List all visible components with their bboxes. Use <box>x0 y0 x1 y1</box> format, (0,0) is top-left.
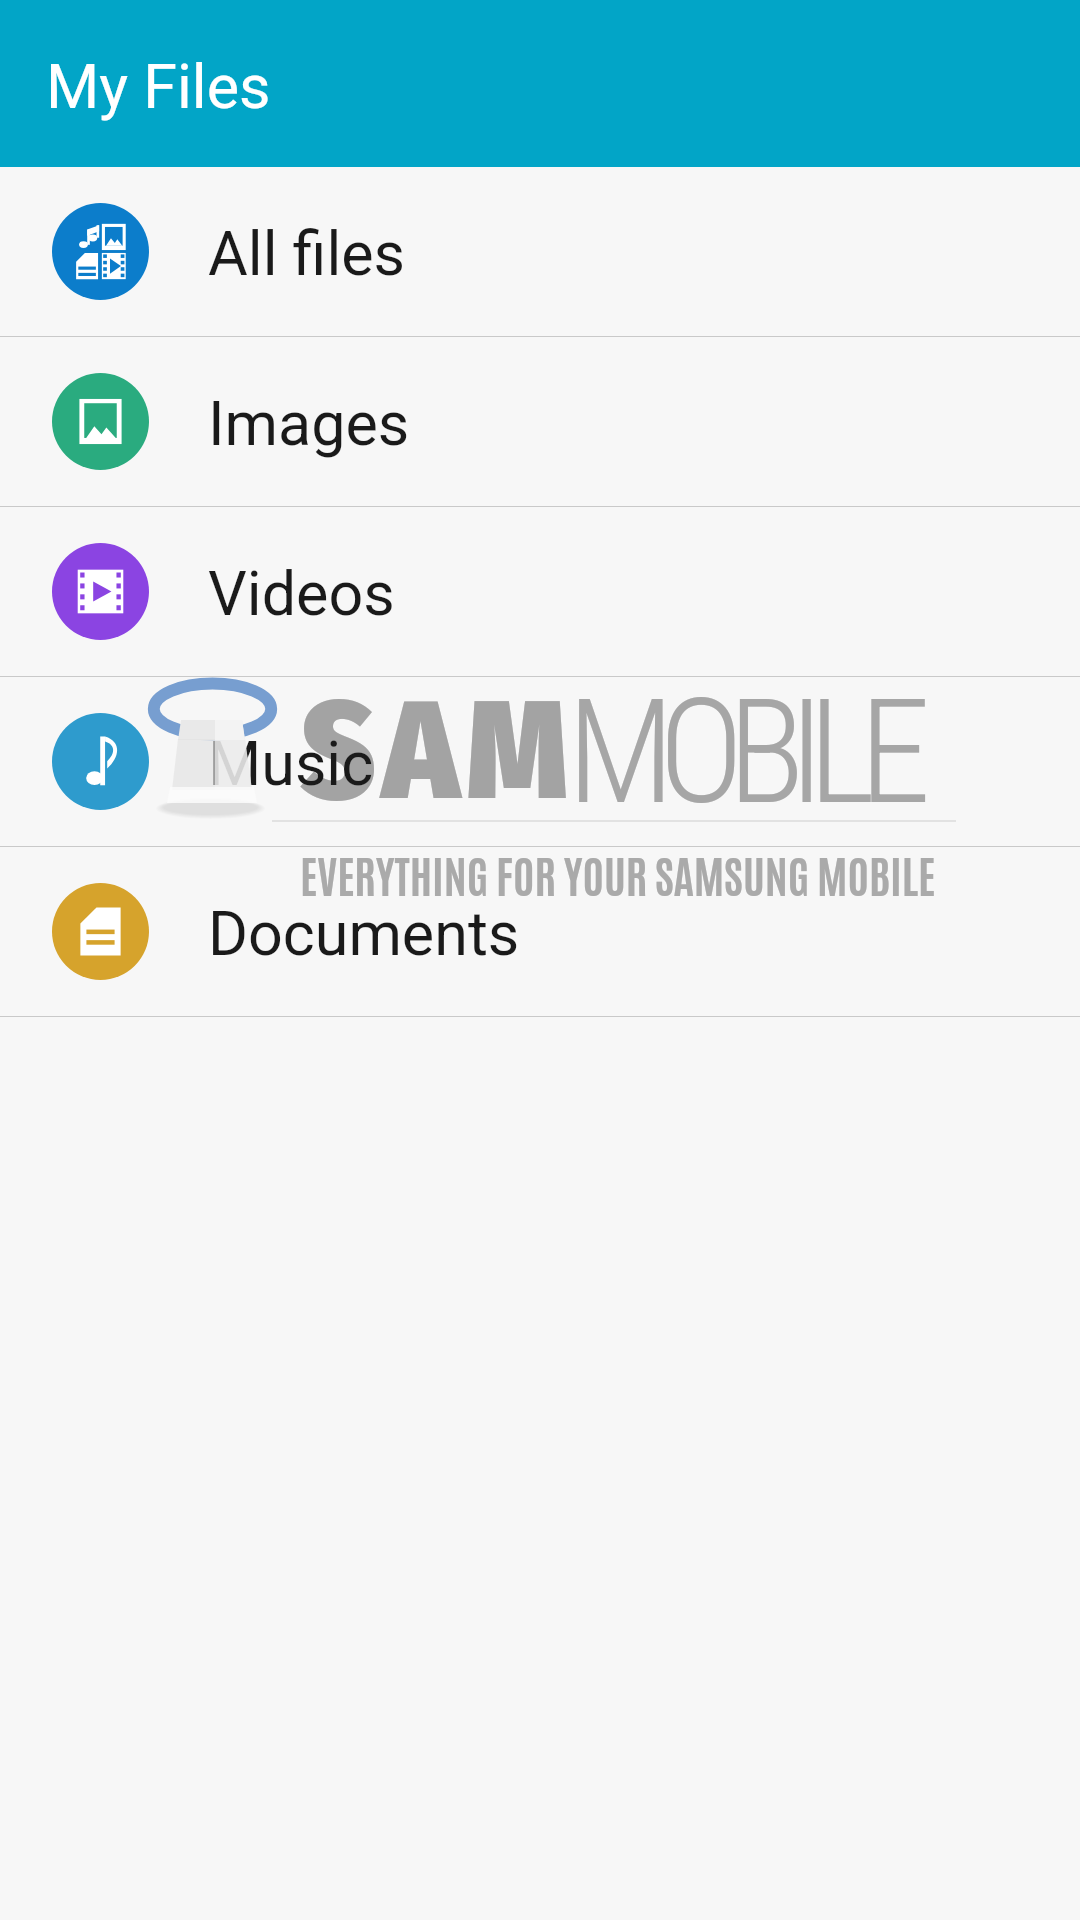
staticText: My Files <box>46 51 271 122</box>
button[interactable]: Videos <box>0 507 1080 677</box>
button[interactable]: Music <box>0 677 1080 847</box>
staticText: Videos <box>208 558 395 629</box>
staticText: EVERYTHING FOR YOUR SAMSUNG MOBILE <box>300 845 936 902</box>
staticText: Images <box>208 388 410 459</box>
button[interactable]: Documents <box>0 847 1080 1017</box>
staticText: SAM <box>301 668 576 835</box>
button[interactable]: All files <box>0 167 1080 337</box>
staticText: All files <box>208 218 406 289</box>
staticText: Music <box>208 728 374 799</box>
button[interactable]: Images <box>0 337 1080 507</box>
staticText: MOBILE <box>567 668 915 837</box>
staticText: Documents <box>208 898 520 969</box>
